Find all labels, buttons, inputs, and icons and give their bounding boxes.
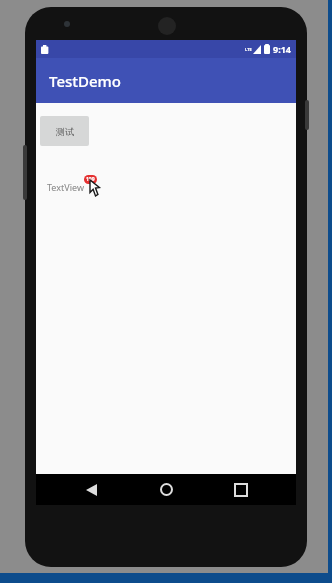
button[interactable]: TextView — [47, 181, 84, 193]
staticText: 测试 — [56, 126, 74, 137]
staticText: TextView — [47, 181, 84, 193]
button[interactable]: Home — [146, 474, 186, 505]
button[interactable]: 测试 — [40, 116, 89, 146]
button[interactable]: Recent apps — [221, 474, 261, 505]
button[interactable]: Back — [71, 474, 111, 505]
other: Notification badge — [84, 175, 97, 184]
staticText: 199 — [86, 176, 95, 183]
staticText: LTE — [245, 47, 252, 52]
staticText: TestDemo — [49, 71, 121, 91]
staticText: 9:14 — [273, 43, 291, 55]
